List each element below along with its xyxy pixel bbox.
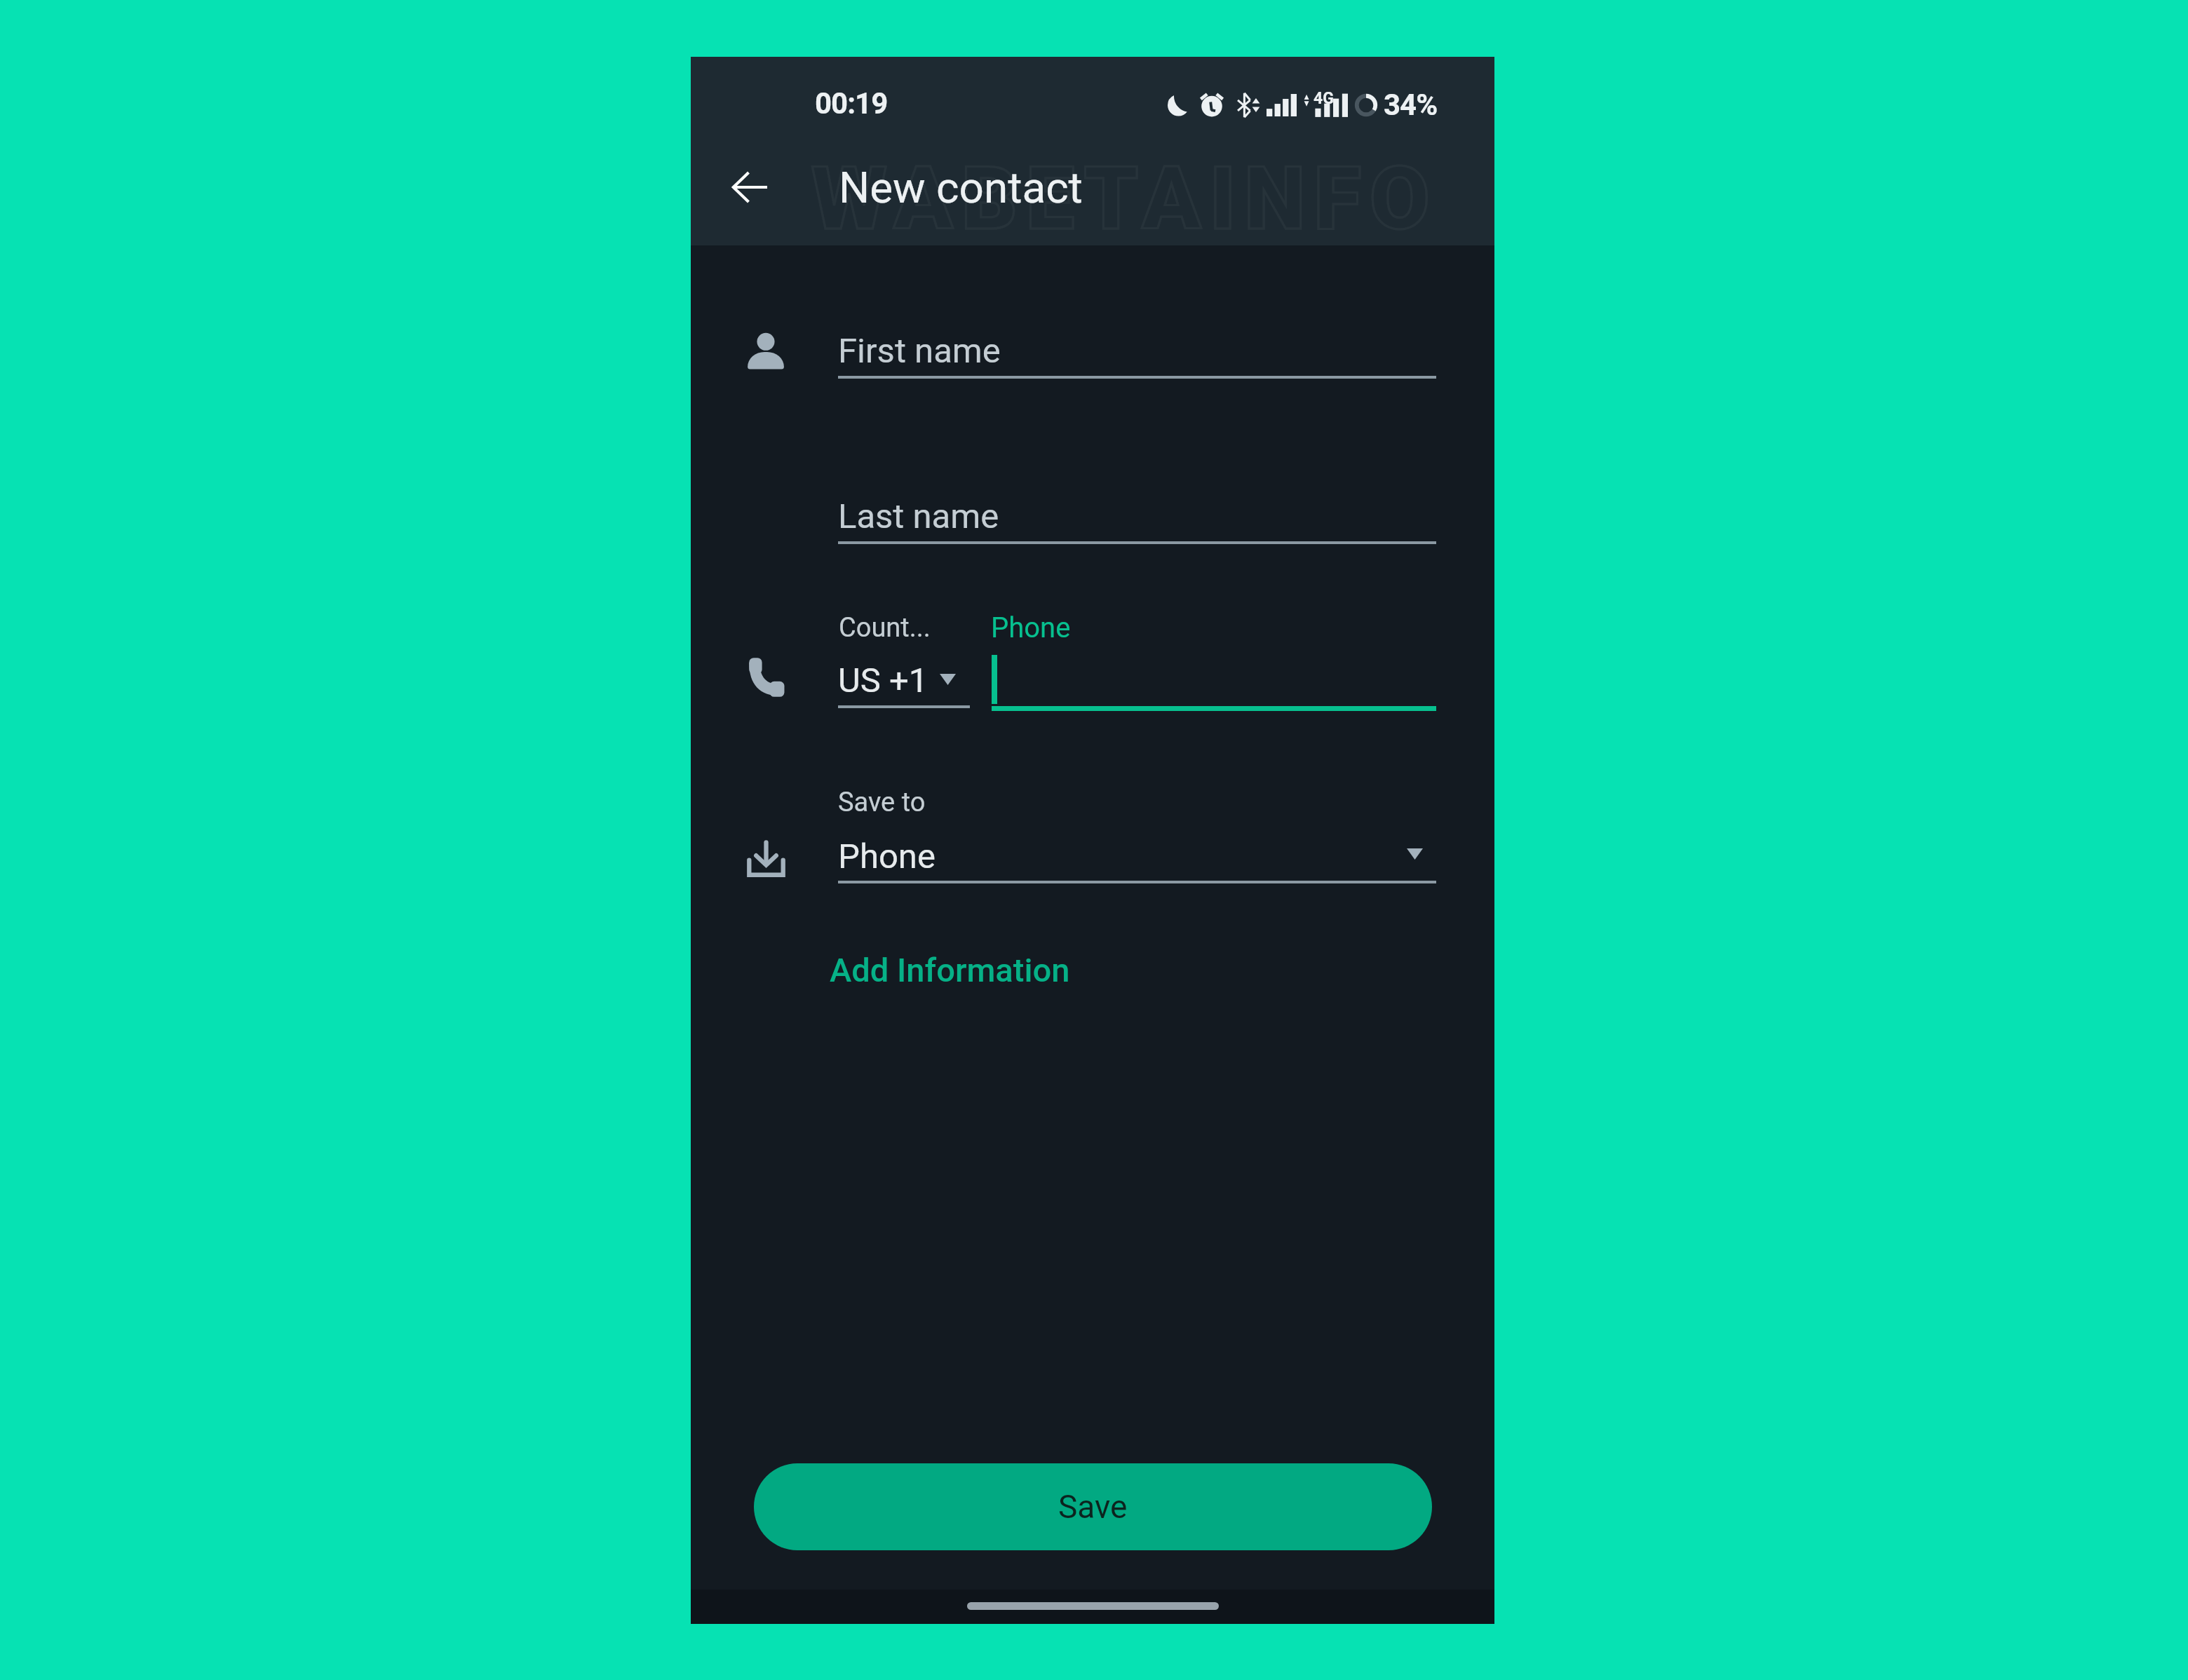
staticText: Save to xyxy=(838,787,926,818)
staticText: Save xyxy=(1058,1488,1128,1526)
button[interactable]: Back xyxy=(722,159,778,215)
button[interactable]: Last name xyxy=(838,496,1436,550)
staticText: Phone xyxy=(838,836,936,876)
button[interactable]: Phone xyxy=(838,836,1436,890)
button[interactable]: First name xyxy=(838,331,1436,384)
staticText: 00:19 xyxy=(815,86,888,121)
staticText: Last name xyxy=(838,496,999,536)
staticText: US +1 xyxy=(838,661,928,700)
button[interactable]: Add Information xyxy=(820,942,1080,998)
staticText: 34% xyxy=(1384,88,1438,122)
staticText: Count... xyxy=(839,612,931,644)
staticText: New contact xyxy=(839,162,1083,213)
button[interactable] xyxy=(992,655,1436,708)
staticText: Add Information xyxy=(830,951,1070,989)
staticText: First name xyxy=(838,331,1001,371)
button[interactable]: Save xyxy=(754,1463,1432,1550)
staticText: Phone xyxy=(991,611,1071,644)
button[interactable]: US +1 xyxy=(838,661,970,710)
staticText: 4G xyxy=(1314,89,1334,108)
staticText: WABETAINFO xyxy=(811,148,1438,250)
